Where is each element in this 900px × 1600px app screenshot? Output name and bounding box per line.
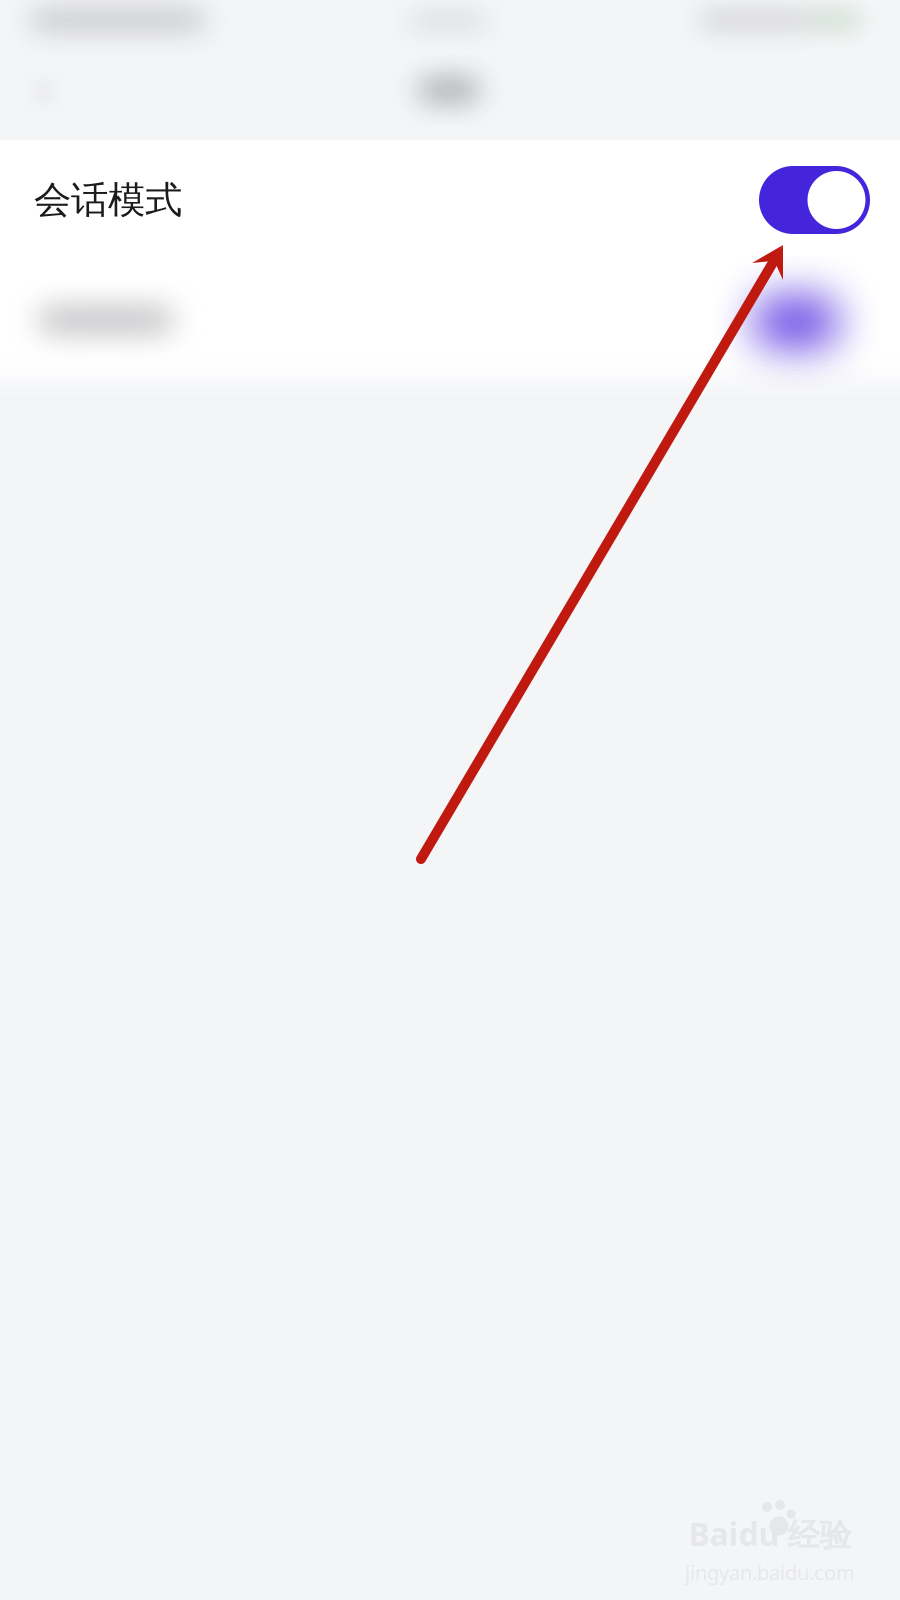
staticText: 会话模式 xyxy=(34,177,182,223)
staticText: jingyan.baidu.com xyxy=(685,1559,855,1586)
button[interactable]: 会话模式 xyxy=(0,127,900,272)
staticText: Baidu 经验 xyxy=(688,1512,851,1555)
